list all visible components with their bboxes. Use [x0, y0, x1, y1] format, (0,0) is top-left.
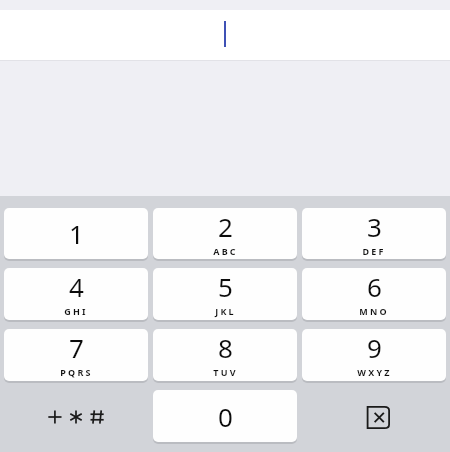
staticText: GHI — [64, 305, 88, 317]
staticText: ABC — [213, 245, 238, 257]
button[interactable]: 2 — [153, 208, 297, 261]
button[interactable]: 3 — [302, 208, 446, 261]
staticText: PQRS — [60, 366, 93, 378]
button[interactable]: 6 — [302, 268, 446, 322]
button[interactable]: 9 — [302, 329, 446, 383]
staticText: 4 — [69, 269, 84, 304]
button[interactable]: 7 — [4, 329, 148, 383]
staticText: WXYZ — [357, 366, 392, 378]
button[interactable]: 0 — [153, 390, 297, 444]
staticText: JKL — [215, 305, 236, 317]
button[interactable]: 4 — [4, 268, 148, 322]
button[interactable]: 8 — [153, 329, 297, 383]
staticText: 2 — [218, 209, 233, 244]
staticText: 9 — [367, 330, 382, 365]
staticText: 3 — [367, 209, 382, 244]
button[interactable] — [4, 390, 148, 444]
staticText: 5 — [218, 269, 233, 304]
staticText: TUV — [213, 366, 238, 378]
staticText: MNO — [359, 305, 389, 317]
staticText: DEF — [362, 245, 386, 257]
staticText: 1 — [69, 216, 84, 251]
staticText: 8 — [218, 330, 233, 365]
button[interactable]: Backspace — [302, 390, 446, 444]
staticText: 0 — [218, 399, 233, 434]
staticText: 6 — [367, 269, 382, 304]
button[interactable] — [0, 10, 450, 60]
button[interactable]: 5 — [153, 268, 297, 322]
button[interactable]: 1 — [4, 208, 148, 261]
staticText: 7 — [69, 330, 84, 365]
